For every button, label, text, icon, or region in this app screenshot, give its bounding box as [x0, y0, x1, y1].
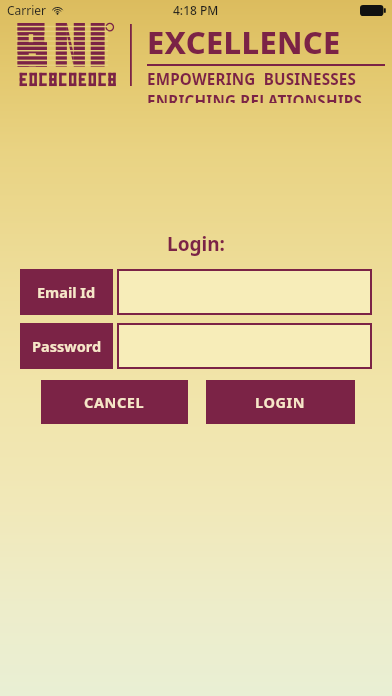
- button[interactable]: LOGIN: [206, 380, 355, 424]
- staticText: Email Id: [37, 282, 96, 302]
- button[interactable]: Password: [20, 323, 113, 369]
- staticText: 4:18 PM: [173, 2, 219, 18]
- button[interactable]: Password input field: [117, 323, 372, 369]
- staticText: Carrier: [7, 2, 47, 18]
- staticText: ENRICHING RELATIONSHIPS: [147, 91, 363, 103]
- staticText: Login:: [167, 231, 225, 257]
- staticText: Password: [32, 336, 102, 356]
- button[interactable]: CANCEL: [41, 380, 188, 424]
- staticText: EXCELLENCE: [147, 21, 341, 63]
- staticText: LOGIN: [255, 392, 306, 412]
- button[interactable]: Email Id: [20, 269, 113, 315]
- staticText: CANCEL: [84, 392, 145, 412]
- button[interactable]: Email Id input field: [117, 269, 372, 315]
- staticText: EMPOWERING BUSINESSES: [147, 69, 357, 90]
